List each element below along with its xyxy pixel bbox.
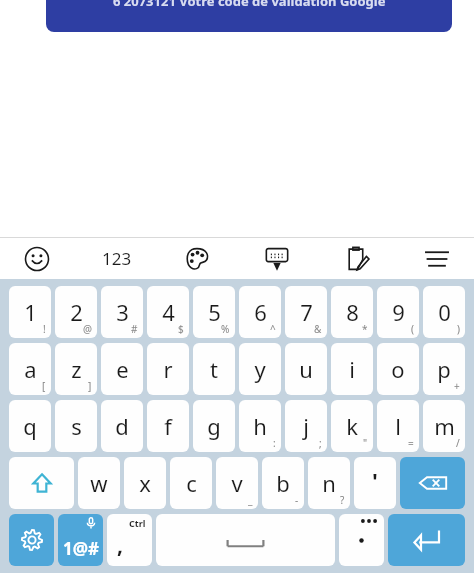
button[interactable]: s	[55, 400, 97, 452]
staticText: v	[231, 468, 243, 498]
staticText: /	[456, 436, 460, 450]
button[interactable]: l	[377, 400, 419, 452]
staticText: x	[139, 468, 151, 498]
staticText: 9	[392, 297, 405, 327]
button[interactable]: t	[193, 343, 235, 395]
button[interactable]: Clipboard	[334, 238, 380, 279]
button[interactable]: Enter	[388, 514, 465, 566]
staticText: :	[273, 436, 276, 450]
staticText: ^	[270, 322, 276, 336]
staticText: f	[164, 411, 172, 441]
staticText: [	[42, 379, 46, 393]
button[interactable]: 5	[193, 286, 235, 338]
button[interactable]: Backspace	[400, 457, 465, 509]
staticText: ;	[319, 436, 322, 450]
button[interactable]: Symbols and voice input	[58, 514, 103, 566]
staticText: 8	[346, 297, 359, 327]
staticText: =	[408, 436, 414, 450]
staticText: 123	[102, 247, 132, 270]
button[interactable]: '	[354, 457, 396, 509]
button[interactable]: 4	[147, 286, 189, 338]
button[interactable]: 1	[9, 286, 51, 338]
button[interactable]: p	[423, 343, 465, 395]
staticText: @	[83, 322, 92, 336]
staticText: )	[457, 322, 460, 336]
button[interactable]: q	[9, 400, 51, 452]
staticText: #	[131, 322, 138, 336]
button[interactable]: 0	[423, 286, 465, 338]
button[interactable]: 123	[94, 238, 140, 279]
button[interactable]: 9	[377, 286, 419, 338]
button[interactable]: Emoji	[14, 238, 60, 279]
button[interactable]: k	[331, 400, 373, 452]
button[interactable]: Shift	[9, 457, 74, 509]
button[interactable]: 6	[239, 286, 281, 338]
button[interactable]: Menu	[414, 238, 460, 279]
staticText: s	[71, 411, 82, 441]
button[interactable]: j	[285, 400, 327, 452]
staticText: 0	[438, 297, 451, 327]
staticText: _	[248, 493, 253, 507]
staticText: k	[346, 411, 358, 441]
button[interactable]: 6 2073121 Votre code de validation Googl…	[46, 0, 452, 32]
button[interactable]: z	[55, 343, 97, 395]
button[interactable]: Period	[339, 514, 384, 566]
button[interactable]: Themes	[174, 238, 220, 279]
staticText: 5	[208, 297, 221, 327]
button[interactable]: b	[262, 457, 304, 509]
staticText: b	[276, 468, 290, 498]
button[interactable]: m	[423, 400, 465, 452]
staticText: $	[178, 322, 184, 336]
staticText: a	[24, 354, 37, 384]
button[interactable]: f	[147, 400, 189, 452]
button[interactable]: d	[101, 400, 143, 452]
button[interactable]: g	[193, 400, 235, 452]
staticText: 3	[116, 297, 129, 327]
staticText: p	[437, 354, 451, 384]
button[interactable]: Comma	[107, 514, 152, 566]
staticText: %	[221, 322, 230, 336]
staticText: r	[163, 354, 173, 384]
button[interactable]: u	[285, 343, 327, 395]
button[interactable]: o	[377, 343, 419, 395]
button[interactable]: w	[78, 457, 120, 509]
staticText: n	[322, 468, 336, 498]
button[interactable]: x	[124, 457, 166, 509]
staticText: (	[411, 322, 414, 336]
staticText: d	[115, 411, 129, 441]
button[interactable]: r	[147, 343, 189, 395]
staticText: ,	[117, 531, 123, 560]
staticText: 6	[254, 297, 267, 327]
staticText: g	[207, 411, 221, 441]
staticText: '	[372, 465, 378, 495]
staticText: ?	[340, 493, 345, 507]
staticText: c	[186, 468, 197, 498]
button[interactable]: a	[9, 343, 51, 395]
staticText: i	[349, 354, 355, 384]
staticText: !	[43, 322, 46, 336]
staticText: 6 2073121 Votre code de validation Googl…	[113, 0, 386, 10]
staticText: m	[434, 411, 455, 441]
button[interactable]: 7	[285, 286, 327, 338]
staticText: j	[303, 411, 309, 441]
button[interactable]: y	[239, 343, 281, 395]
button[interactable]: Space	[156, 514, 335, 566]
button[interactable]: 8	[331, 286, 373, 338]
button[interactable]: h	[239, 400, 281, 452]
button[interactable]: Hide keyboard	[254, 238, 300, 279]
staticText: ]	[88, 379, 92, 393]
button[interactable]: e	[101, 343, 143, 395]
button[interactable]: 3	[101, 286, 143, 338]
staticText: 1@#	[63, 537, 99, 560]
button[interactable]: c	[170, 457, 212, 509]
button[interactable]: i	[331, 343, 373, 395]
staticText: +	[454, 379, 460, 393]
button[interactable]: Settings	[9, 514, 54, 566]
button[interactable]: 2	[55, 286, 97, 338]
button[interactable]: n	[308, 457, 350, 509]
staticText: 7	[300, 297, 313, 327]
button[interactable]: v	[216, 457, 258, 509]
staticText: t	[210, 354, 218, 384]
staticText: y	[254, 354, 266, 384]
staticText: w	[90, 468, 108, 498]
